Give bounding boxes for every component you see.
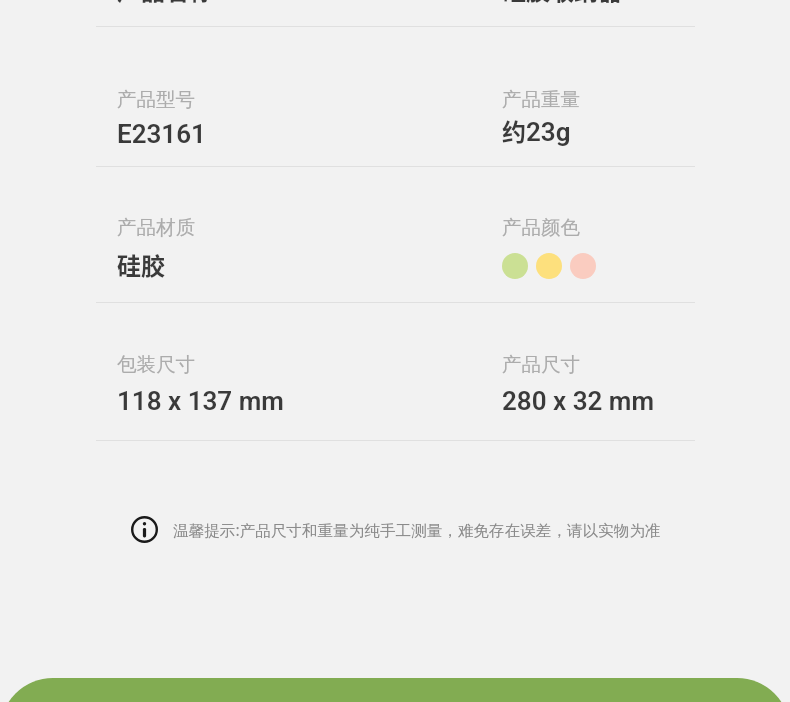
- button[interactable]: 产品名称: [0, 0, 790, 26]
- staticText: 硅胶收纳器: [502, 0, 622, 7]
- button[interactable]: 产品型号: [0, 27, 790, 166]
- staticText: 温馨提示:产品尺寸和重量为纯手工测量，难免存在误差，请以实物为准: [173, 519, 661, 540]
- button[interactable]: Green colour option: [502, 253, 528, 279]
- staticText: 118 x 137 mm: [117, 386, 284, 416]
- staticText: 产品名称: [117, 0, 213, 7]
- staticText: 产品颜色: [502, 215, 580, 240]
- other: More information: [131, 516, 158, 543]
- button[interactable]: More information: [131, 516, 661, 543]
- button[interactable]: 产品材质: [0, 167, 790, 302]
- staticText: 包装尺寸: [117, 352, 195, 377]
- staticText: 产品重量: [502, 87, 580, 112]
- button[interactable]: 包装尺寸: [0, 303, 790, 440]
- staticText: 产品材质: [117, 215, 195, 240]
- staticText: 产品尺寸: [502, 352, 580, 377]
- staticText: 硅胶: [117, 247, 165, 282]
- button[interactable]: Pink colour option: [570, 253, 596, 279]
- staticText: 产品型号: [117, 87, 195, 112]
- staticText: 约23g: [502, 113, 571, 148]
- button[interactable]: Yellow colour option: [536, 253, 562, 279]
- button[interactable]: Continue: [0, 678, 790, 702]
- staticText: E23161: [117, 119, 206, 149]
- staticText: 280 x 32 mm: [502, 386, 654, 416]
